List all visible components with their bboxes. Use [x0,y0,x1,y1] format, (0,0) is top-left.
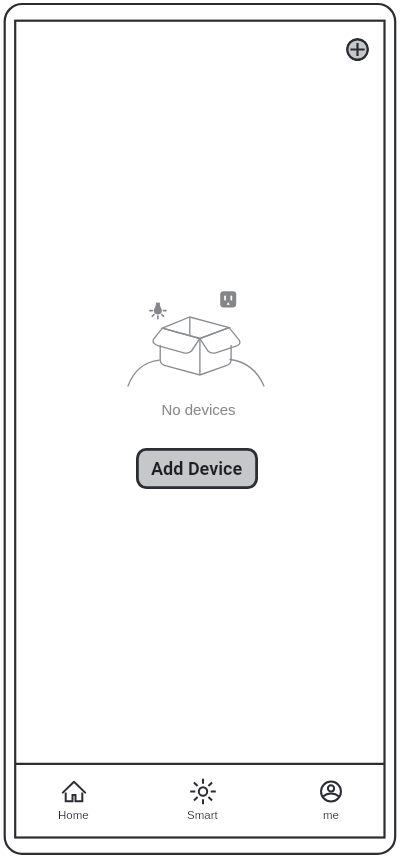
button[interactable]: Home [23,766,123,836]
staticText: me [323,809,339,822]
button[interactable]: Smart [152,766,252,836]
staticText: Home [58,809,89,822]
button[interactable]: Add Device [136,448,258,489]
staticText: Add Device [151,458,243,479]
button[interactable]: me [281,766,381,836]
staticText: Smart [187,809,218,822]
staticText: No devices [161,401,236,418]
button[interactable]: Add device [346,38,369,61]
